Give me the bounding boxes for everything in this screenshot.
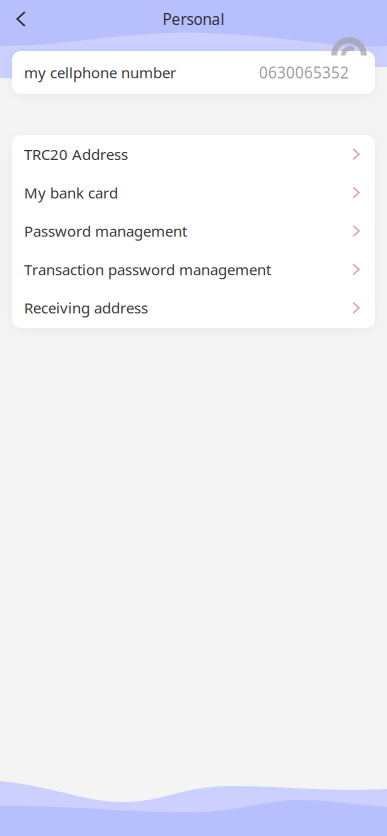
- staticText: TRC20 Address: [24, 144, 128, 164]
- staticText: Transaction password management: [24, 259, 271, 279]
- button[interactable]: Transaction password management: [12, 250, 375, 289]
- staticText: my cellphone number: [24, 62, 176, 83]
- button[interactable]: Receiving address: [12, 289, 375, 327]
- staticText: 0630065352: [259, 62, 349, 83]
- staticText: Receiving address: [24, 298, 148, 318]
- button[interactable]: My bank card: [12, 173, 375, 212]
- staticText: Personal: [162, 9, 224, 29]
- staticText: My bank card: [24, 182, 118, 203]
- button[interactable]: Password management: [12, 212, 375, 250]
- button[interactable]: Back: [0, 0, 42, 38]
- button[interactable]: my cellphone number: [12, 51, 375, 94]
- button[interactable]: TRC20 Address: [12, 135, 375, 173]
- staticText: Password management: [24, 221, 187, 241]
